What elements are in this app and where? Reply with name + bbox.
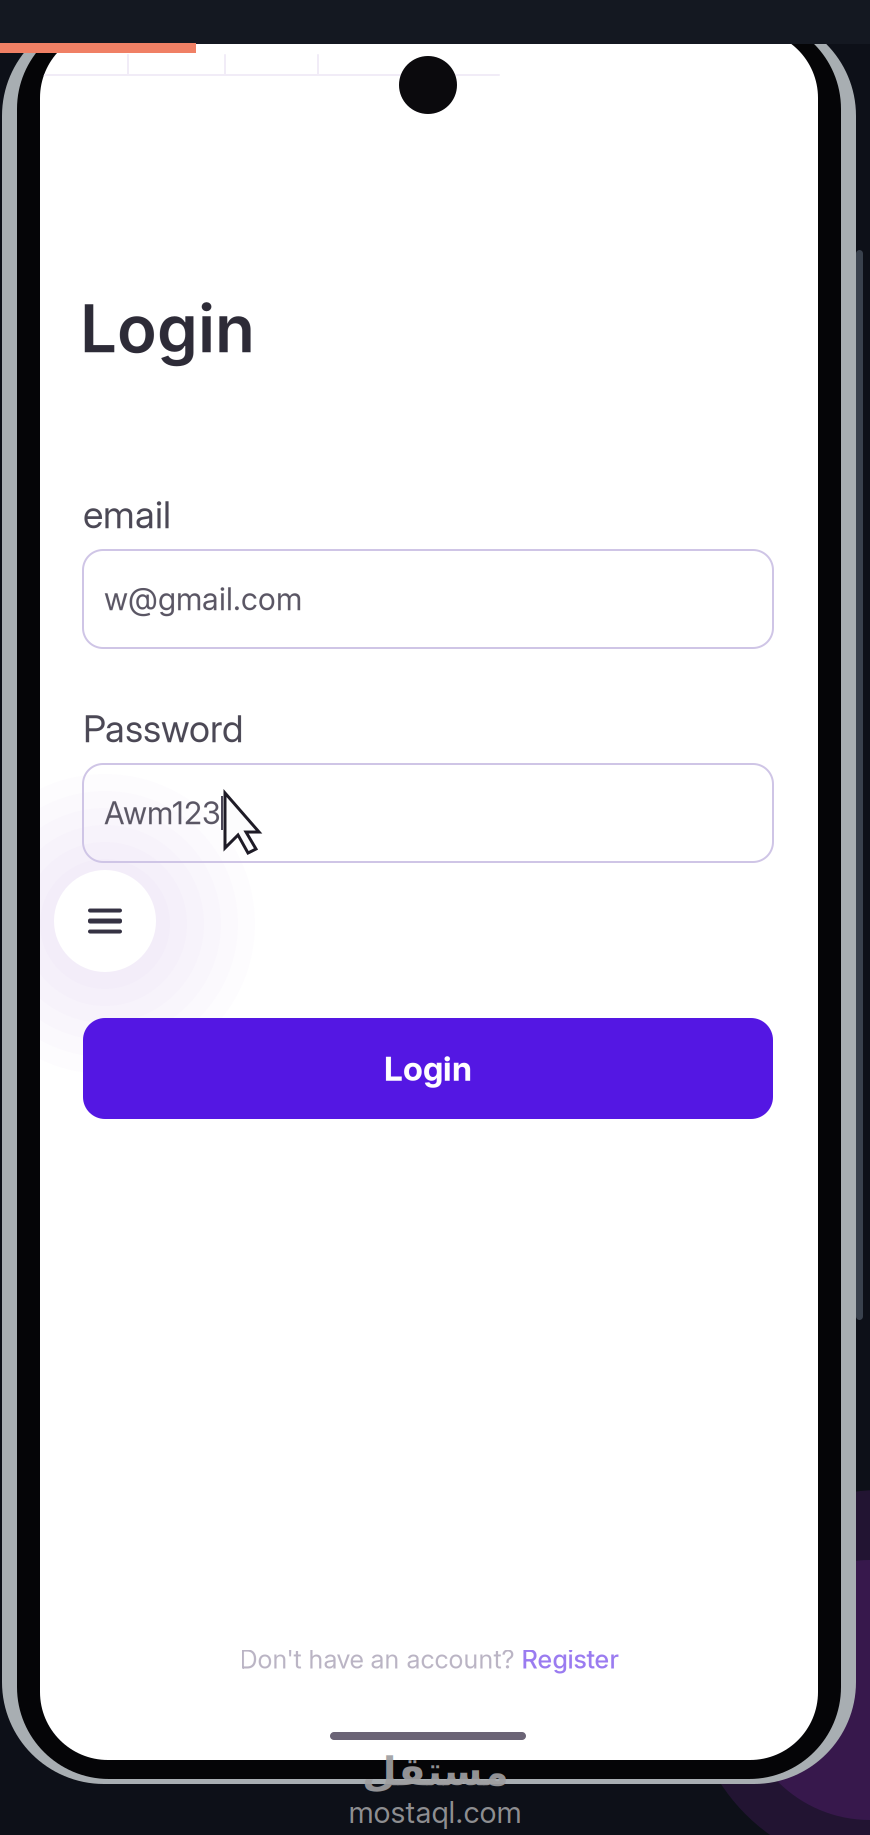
staticText: Login: [384, 1048, 472, 1089]
staticText: Don't have an account?: [239, 1644, 521, 1675]
staticText: Password: [83, 706, 243, 751]
staticText: email: [83, 492, 171, 537]
button[interactable]: Login: [83, 1018, 773, 1119]
staticText: مستقل: [361, 1748, 508, 1795]
staticText: w@gmail.com: [104, 580, 302, 617]
staticText: Register: [521, 1644, 618, 1675]
staticText: Awm123: [104, 794, 221, 831]
button[interactable]: Register: [521, 1644, 618, 1675]
staticText: Login: [80, 289, 255, 368]
button[interactable]: Menu: [46, 862, 164, 980]
staticText: mostaql.com: [348, 1795, 521, 1830]
